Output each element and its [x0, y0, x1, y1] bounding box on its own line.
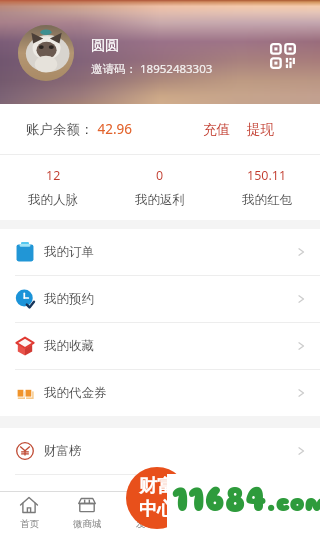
staticText: 邀请码： 18952483303 — [91, 61, 213, 77]
staticText: 12 — [46, 167, 61, 184]
staticText: 中心 — [139, 498, 175, 521]
button[interactable]: 我的预约 — [0, 276, 320, 322]
staticText: 微商城 — [73, 518, 102, 530]
staticText: 财富 — [139, 475, 175, 498]
staticText: 42.96 — [94, 120, 133, 138]
staticText: 150.11 — [247, 167, 287, 184]
button[interactable]: 财富榜 — [0, 428, 320, 474]
staticText: 财富榜 — [44, 443, 82, 459]
button[interactable]: Avatar — [18, 25, 74, 81]
staticText: 我的收藏 — [44, 338, 94, 354]
button[interactable]: QR code — [270, 43, 296, 69]
staticText: 我的红包 — [242, 192, 292, 208]
staticText: 上级好友 — [44, 490, 94, 506]
staticText: 我的预约 — [44, 291, 94, 307]
staticText: 我的返利 — [135, 192, 185, 208]
staticText: 我的代金券 — [44, 385, 107, 401]
button[interactable]: 我的订单 — [0, 229, 320, 275]
button[interactable]: 我的代金券 — [0, 370, 320, 416]
button[interactable]: 12 — [0, 155, 106, 220]
staticText: 11684.com — [172, 479, 320, 520]
button[interactable]: 发现 — [116, 492, 174, 533]
staticText: 我的人脉 — [28, 192, 78, 208]
button[interactable]: 消息 — [174, 492, 232, 533]
button[interactable]: 提现 — [239, 113, 282, 146]
staticText: 账户余额： — [26, 121, 94, 138]
staticText: 提现 — [247, 121, 274, 138]
staticText: 0 — [156, 167, 164, 184]
button[interactable]: 首页 — [0, 492, 58, 533]
button[interactable]: 上级好友 — [0, 475, 320, 521]
button[interactable]: 微商城 — [58, 492, 116, 533]
staticText: 圆圆 — [91, 37, 119, 55]
button[interactable]: 我的 — [232, 492, 290, 533]
staticText: 我的订单 — [44, 244, 94, 260]
button[interactable]: 我的收藏 — [0, 323, 320, 369]
staticText: 发现 — [136, 518, 155, 530]
button[interactable]: 150.11 — [213, 155, 320, 220]
button[interactable]: 充值 — [195, 113, 238, 146]
staticText: 充值 — [203, 121, 230, 138]
button[interactable]: 0 — [106, 155, 213, 220]
staticText: 首页 — [20, 518, 39, 530]
